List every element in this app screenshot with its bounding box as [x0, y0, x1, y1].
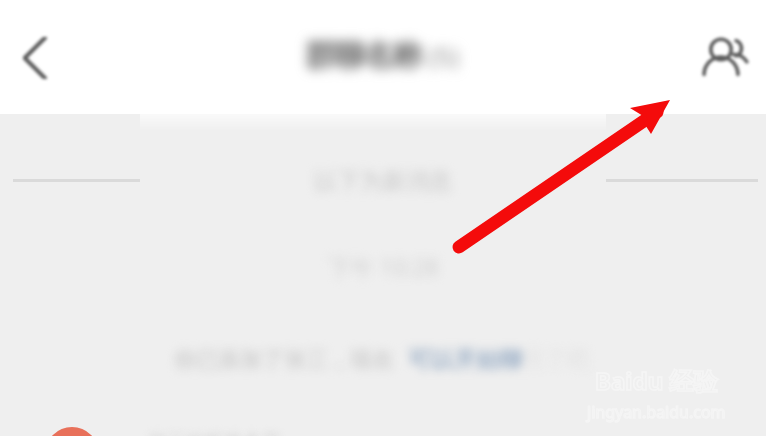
staticText: 可以开始聊 — [408, 345, 523, 374]
staticText: 你已添加了张三，现在 — [174, 346, 394, 374]
button[interactable]: Back — [4, 27, 66, 89]
button[interactable]: Group members — [690, 25, 756, 91]
staticText: 以下为新消息 — [314, 167, 452, 196]
staticText: (5) — [428, 38, 460, 73]
staticText: 群聊名称 — [306, 36, 422, 75]
